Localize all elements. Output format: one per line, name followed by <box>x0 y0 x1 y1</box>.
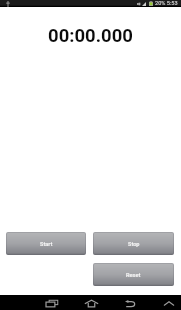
staticText: Reset <box>126 272 141 279</box>
staticText: 20% 5:53 <box>155 0 178 7</box>
button[interactable]: Stop <box>93 232 174 255</box>
button[interactable]: Start <box>6 232 86 255</box>
button[interactable]: Home <box>80 295 102 310</box>
button[interactable]: Reset <box>93 263 174 286</box>
staticText: Start <box>40 241 53 248</box>
button[interactable]: Recents <box>41 295 63 310</box>
button[interactable]: Back <box>119 295 141 310</box>
staticText: Stop <box>128 241 140 248</box>
button[interactable]: More options <box>158 295 180 310</box>
staticText: 00:00.000 <box>0 25 181 47</box>
